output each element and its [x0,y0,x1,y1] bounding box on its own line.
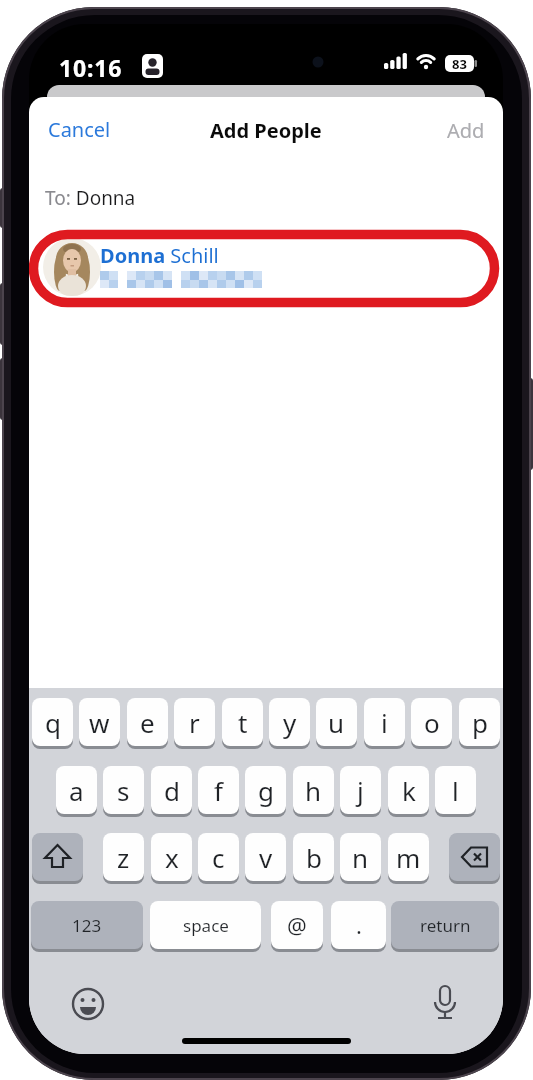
button[interactable]: l [435,766,476,814]
staticText: z [117,840,130,875]
staticText: i [381,705,388,740]
staticText: e [140,705,155,740]
staticText: f [214,773,223,808]
button[interactable]: k [388,766,429,814]
button[interactable] [71,987,105,1021]
button[interactable]: e [127,698,168,746]
button[interactable]: g [245,766,286,814]
button[interactable] [431,984,459,1024]
staticText: To: Donna [45,185,136,211]
button[interactable]: i [364,698,405,746]
button[interactable]: c [198,833,239,881]
button[interactable]: space [150,901,261,949]
button[interactable]: Add [423,116,485,144]
button[interactable]: o [411,698,452,746]
button[interactable] [32,833,83,881]
staticText: a [69,773,84,808]
staticText: o [424,705,440,740]
button[interactable]: h [293,766,334,814]
staticText: l [452,773,459,808]
staticText: Add [447,117,485,144]
button[interactable]: v [245,833,286,881]
staticText: 123 [72,914,102,937]
button[interactable]: r [174,698,215,746]
button[interactable]: x [151,833,192,881]
staticText: g [258,773,274,808]
button[interactable] [449,833,500,881]
staticText: 10:16 [59,52,123,83]
button[interactable]: q [32,698,73,746]
staticText: k [402,773,416,808]
staticText: Donna Schill [100,242,219,269]
staticText: x [165,840,179,875]
button[interactable]: z [103,833,144,881]
staticText: Cancel [48,116,111,143]
staticText: . [356,910,362,940]
staticText: q [45,705,61,740]
staticText: m [396,840,421,875]
button[interactable]: d [151,766,192,814]
button[interactable] [33,234,497,301]
staticText: @ [287,910,307,940]
staticText: p [472,705,488,740]
staticText: space [183,914,229,937]
button[interactable]: 123 [31,901,143,949]
button[interactable]: f [198,766,239,814]
button[interactable]: Cancel [48,116,111,143]
button[interactable]: n [340,833,381,881]
staticText: 83 [452,55,467,72]
staticText: u [328,705,345,740]
button[interactable]: u [316,698,357,746]
staticText: r [189,705,200,740]
button[interactable]: return [391,901,499,949]
button[interactable]: s [103,766,144,814]
button[interactable]: p [459,698,500,746]
button[interactable]: . [331,901,386,949]
staticText: y [283,705,297,740]
staticText: t [238,705,248,740]
staticText: return [420,914,471,937]
button[interactable]: j [340,766,381,814]
button[interactable]: y [269,698,310,746]
staticText: h [305,773,322,808]
button[interactable]: a [56,766,97,814]
staticText: v [259,840,273,875]
staticText: Add People [210,117,322,144]
staticText: j [357,773,364,808]
staticText: n [352,840,369,875]
button[interactable]: b [293,833,334,881]
button[interactable]: t [222,698,263,746]
button[interactable]: m [388,833,429,881]
staticText: d [164,773,180,808]
staticText: s [117,773,130,808]
button[interactable]: @ [271,901,323,949]
staticText: b [306,840,322,875]
button[interactable]: w [79,698,120,746]
staticText: w [89,705,110,740]
staticText: c [212,840,225,875]
